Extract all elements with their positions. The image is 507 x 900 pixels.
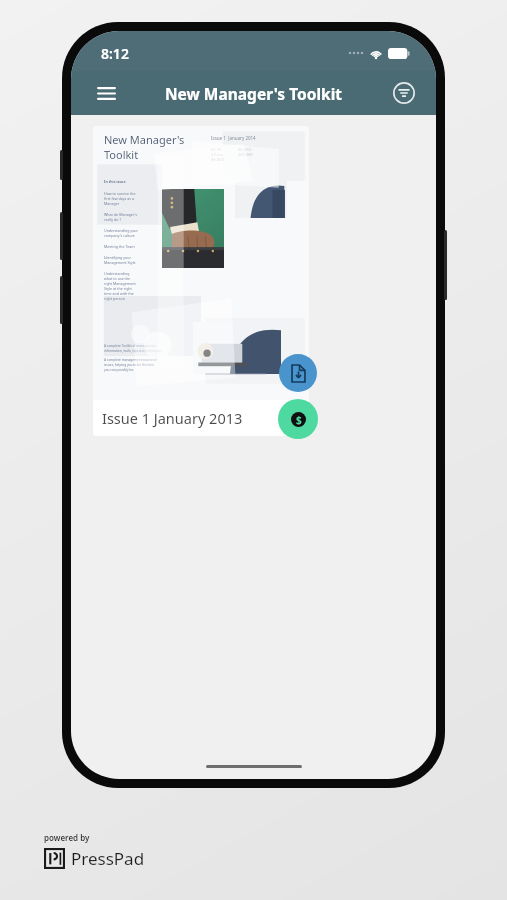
staticText: In this issue xyxy=(104,179,126,184)
staticText: New Manager's xyxy=(104,132,185,147)
staticText: New Manager's Toolkit xyxy=(165,83,342,104)
staticText: $8 AED xyxy=(211,157,225,162)
staticText: Meeting the Team xyxy=(104,244,135,249)
staticText: £2.95 xyxy=(211,147,222,152)
staticText: A complete management source of issues, … xyxy=(104,358,157,371)
staticText: 400 INR xyxy=(238,152,253,157)
staticText: powered by xyxy=(44,832,90,843)
staticText: How to survive the first few days as a M… xyxy=(104,191,136,206)
staticText: Identifying your Management Style xyxy=(104,255,136,265)
button[interactable]: Sort and filter issues xyxy=(388,77,420,109)
staticText: Issue 1 January 2013 xyxy=(102,408,243,428)
staticText: What do Manager's really do ? xyxy=(104,212,137,222)
staticText: Understanding what to use the right Mana… xyxy=(104,271,136,301)
staticText: 8:12 xyxy=(101,44,129,63)
staticText: $6 USD xyxy=(238,147,252,152)
button[interactable]: Download issue xyxy=(279,354,317,392)
staticText: $ xyxy=(296,413,302,427)
staticText: A complete Toolkit of management informa… xyxy=(104,344,162,352)
button[interactable]: Buy issue xyxy=(278,399,318,439)
staticText: PressPad xyxy=(71,847,145,870)
button[interactable]: Open navigation menu xyxy=(89,76,123,110)
staticText: Understanding your company's culture xyxy=(104,228,139,238)
staticText: 4 Euro xyxy=(211,152,224,157)
staticText: Issue 1 January 2014 xyxy=(211,135,256,141)
button[interactable]: New Manager's xyxy=(93,126,309,436)
staticText: Toolkit xyxy=(104,147,139,162)
